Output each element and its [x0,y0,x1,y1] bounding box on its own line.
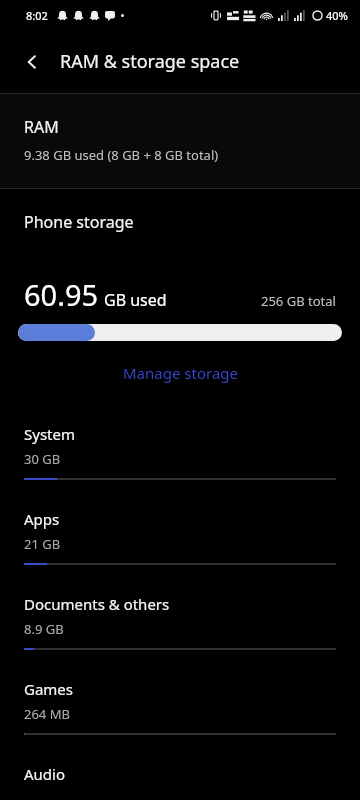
staticText: RAM & storage space [60,49,240,74]
button[interactable]: Manage storage [0,363,360,383]
staticText: Manage storage [123,363,238,383]
staticText: 264 MB [24,705,70,723]
staticText: 8:02 [26,8,48,23]
staticText: System [24,424,75,444]
staticText: Games [24,679,74,699]
staticText: Documents & others [24,594,170,614]
button[interactable]: Back [14,44,50,80]
staticText: 60.95 [24,275,99,314]
staticText: Apps [24,509,60,529]
button[interactable]: Audio [0,749,360,784]
staticText: RAM [24,116,59,138]
button[interactable]: RAM [0,94,360,188]
staticText: 21 GB [24,535,61,553]
staticText: Phone storage [24,211,134,233]
staticText: 40% [326,8,348,23]
staticText: 30 GB [24,450,61,468]
staticText: 256 GB total [261,292,336,310]
staticText: GB used [104,289,167,311]
button[interactable]: Apps [0,494,360,579]
staticText: 8.9 GB [24,620,64,638]
button[interactable]: System [0,409,360,494]
button[interactable]: Games [0,664,360,749]
staticText: Audio [24,764,66,784]
button[interactable]: Documents & others [0,579,360,664]
staticText: 9.38 GB used (8 GB + 8 GB total) [24,146,219,164]
